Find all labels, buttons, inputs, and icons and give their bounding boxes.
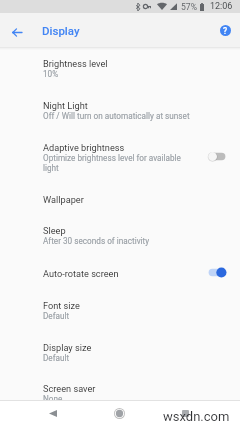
button[interactable]: Screen saver xyxy=(0,372,240,400)
button[interactable]: Adaptive brightness xyxy=(0,131,240,183)
staticText: Font size xyxy=(43,300,80,311)
button[interactable]: Back xyxy=(41,400,65,427)
staticText: After 30 seconds of inactivity xyxy=(43,236,201,246)
staticText: Screen saver xyxy=(43,383,96,394)
staticText: 57% xyxy=(181,2,197,12)
button[interactable]: Brightness level xyxy=(0,47,240,89)
staticText: 12:06 xyxy=(210,1,233,12)
staticText: ? xyxy=(223,26,228,36)
staticText: Display xyxy=(42,24,80,37)
staticText: Sleep xyxy=(43,225,66,236)
button[interactable]: Auto-rotate screen xyxy=(0,258,240,289)
staticText: Display size xyxy=(43,342,92,353)
staticText: Off / Will turn on automatically at suns… xyxy=(43,111,201,121)
button[interactable]: Display size xyxy=(0,331,240,373)
staticText: Optimize brightness level for available … xyxy=(43,153,183,173)
staticText: Wallpaper xyxy=(43,194,84,205)
staticText: Night Light xyxy=(43,100,88,111)
button[interactable]: Recent apps xyxy=(173,400,197,427)
button[interactable]: Wallpaper xyxy=(0,184,240,216)
button[interactable]: Font size xyxy=(0,289,240,331)
button[interactable]: Night Light xyxy=(0,94,240,136)
staticText: Auto-rotate screen xyxy=(43,268,119,279)
staticText: Brightness level xyxy=(43,58,108,69)
staticText: 10% xyxy=(43,69,201,79)
button[interactable]: Back xyxy=(6,21,28,43)
staticText: Adaptive brightness xyxy=(43,142,125,153)
button[interactable]: Home xyxy=(107,400,131,427)
staticText: Default xyxy=(43,353,201,363)
staticText: Default xyxy=(43,311,201,321)
button[interactable]: Help xyxy=(214,19,237,42)
button[interactable]: Sleep xyxy=(0,214,240,257)
staticText: wsxdn.com xyxy=(163,409,230,424)
staticText: None xyxy=(43,394,201,400)
